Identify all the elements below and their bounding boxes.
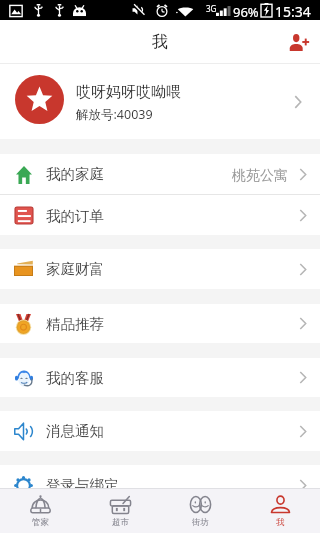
staticText: 我的订单 bbox=[46, 207, 104, 225]
button[interactable]: 我的家庭 bbox=[0, 154, 320, 194]
staticText: 桃苑公寓 bbox=[232, 167, 288, 185]
button[interactable]: 超市 bbox=[80, 488, 160, 533]
staticText: 我的客服 bbox=[46, 369, 104, 387]
button[interactable]: 我的订单 bbox=[0, 196, 320, 235]
staticText: 3G bbox=[206, 3, 217, 14]
button[interactable]: 精品推荐 bbox=[0, 304, 320, 343]
button[interactable]: 家庭财富 bbox=[0, 249, 320, 289]
staticText: 哎呀妈呀哎呦喂 bbox=[76, 83, 181, 102]
button[interactable]: 我 bbox=[240, 488, 320, 533]
staticText: 登录与绑定 bbox=[46, 476, 119, 488]
staticText: 解放号:40039 bbox=[76, 106, 153, 123]
staticText: 家庭财富 bbox=[46, 260, 104, 278]
staticText: 消息通知 bbox=[46, 422, 104, 440]
staticText: 管家 bbox=[32, 517, 49, 528]
staticText: 街坊 bbox=[192, 517, 209, 528]
button[interactable]: 街坊 bbox=[160, 488, 240, 533]
staticText: 96% bbox=[233, 3, 259, 21]
staticText: 超市 bbox=[112, 517, 129, 528]
staticText: 我 bbox=[276, 517, 285, 528]
button[interactable]: 我的客服 bbox=[0, 358, 320, 397]
staticText: 我的家庭 bbox=[46, 165, 104, 183]
button[interactable]: 管家 bbox=[0, 488, 80, 533]
staticText: 精品推荐 bbox=[46, 315, 104, 333]
staticText: 15:34 bbox=[275, 2, 311, 21]
button[interactable]: 登录与绑定 bbox=[0, 465, 320, 488]
button[interactable]: 哎呀妈呀哎呦喂 bbox=[0, 64, 320, 139]
button[interactable]: Add friend bbox=[276, 20, 320, 64]
button[interactable]: 消息通知 bbox=[0, 411, 320, 451]
staticText: 我 bbox=[152, 32, 168, 52]
